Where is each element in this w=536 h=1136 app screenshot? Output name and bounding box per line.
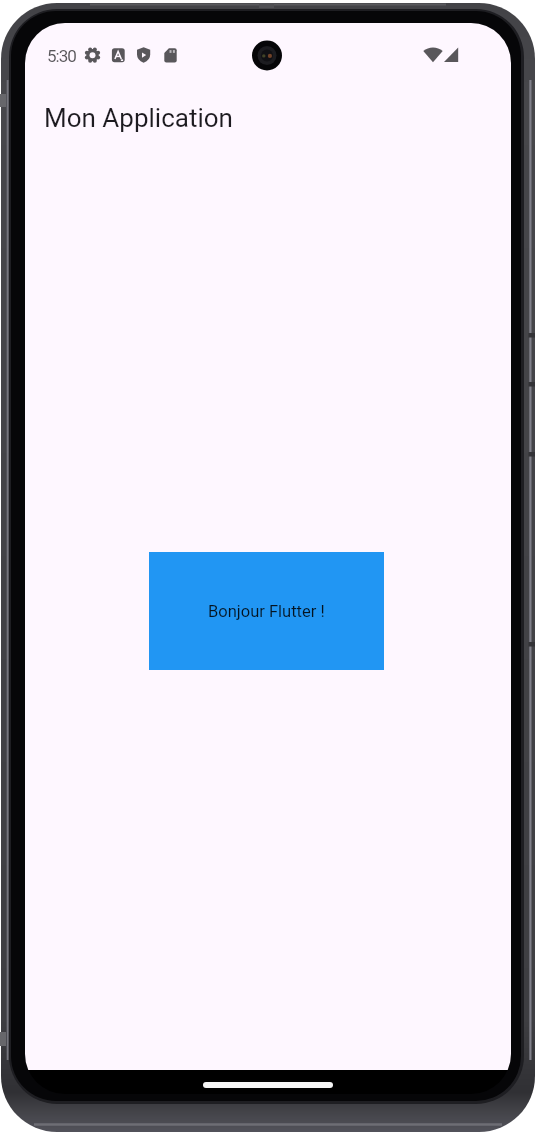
- staticText: 5:30: [47, 46, 76, 66]
- staticText: Bonjour Flutter !: [208, 602, 325, 621]
- staticText: Mon Application: [44, 103, 233, 133]
